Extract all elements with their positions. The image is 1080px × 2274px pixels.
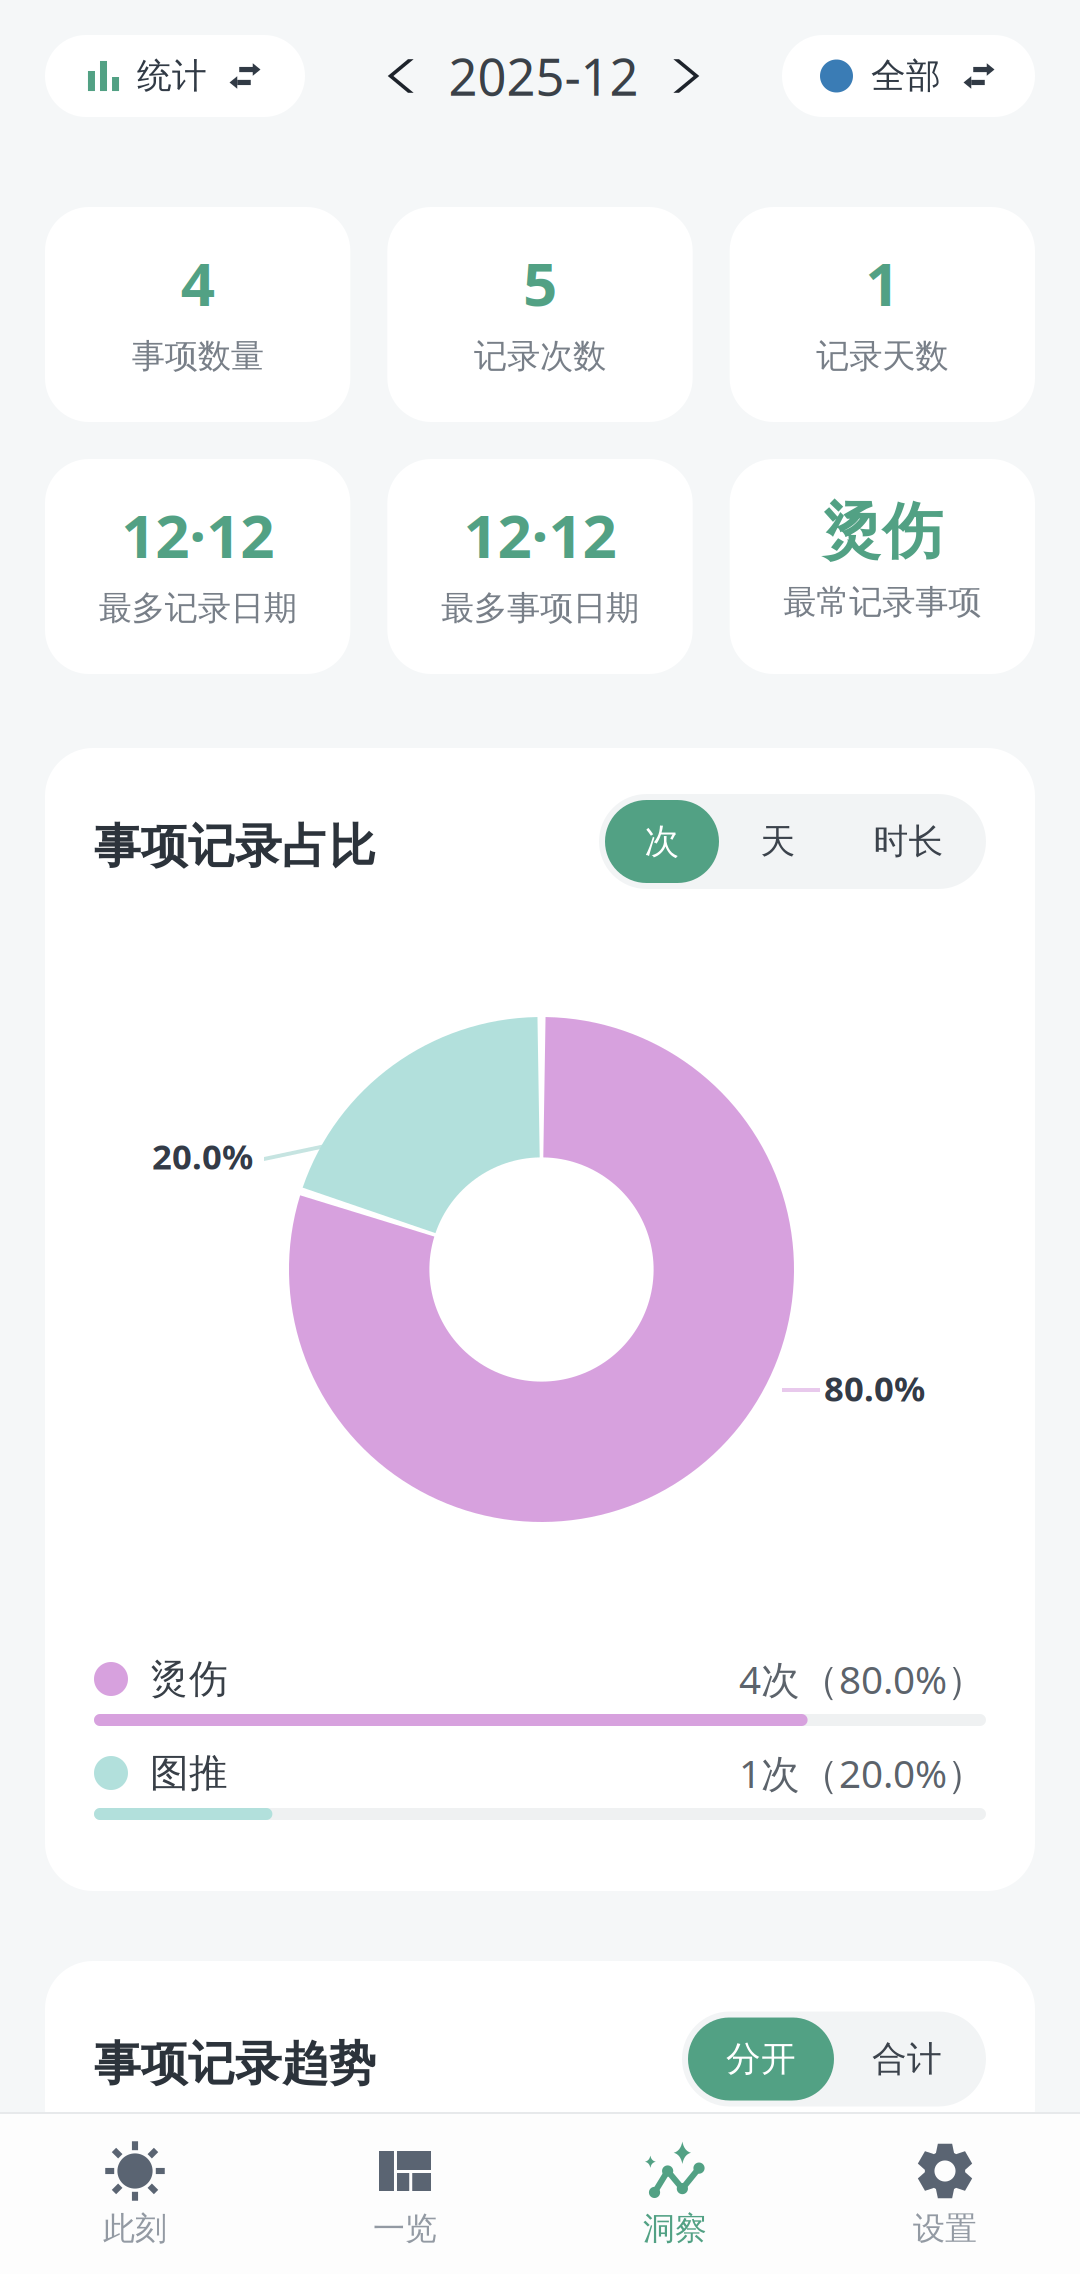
button[interactable]: 此刻 (0, 2113, 270, 2274)
staticText: 事项记录占比 (94, 818, 376, 875)
staticText: 全部 (871, 55, 941, 97)
staticText: 图推 (150, 1749, 228, 1797)
staticText: 记录天数 (816, 336, 948, 377)
staticText: 4次（80.0%） (739, 1653, 986, 1705)
staticText: 记录次数 (474, 336, 606, 377)
button[interactable]: 统计 (45, 35, 305, 117)
button[interactable]: 烫伤 (730, 459, 1035, 674)
button[interactable]: 分开 (688, 2017, 834, 2100)
button[interactable]: 全部 (782, 35, 1035, 117)
button[interactable]: 5 (387, 207, 693, 422)
button[interactable]: 合计 (834, 2017, 980, 2100)
staticText: 最多记录日期 (99, 588, 297, 629)
staticText: 时长 (873, 820, 943, 863)
staticText: 天 (760, 820, 795, 863)
staticText: 洞察 (643, 2209, 707, 2248)
button[interactable]: 1 (730, 207, 1035, 422)
staticText: 此刻 (103, 2209, 167, 2248)
button[interactable]: Next month (660, 53, 706, 99)
button[interactable]: 设置 (810, 2113, 1080, 2274)
staticText: 设置 (913, 2209, 977, 2248)
staticText: 一览 (373, 2209, 437, 2248)
staticText: 烫伤 (150, 1655, 228, 1703)
button[interactable]: 12·12 (387, 459, 693, 674)
button[interactable]: 4 (45, 207, 350, 422)
staticText: 12·12 (463, 495, 616, 575)
staticText: 事项数量 (132, 336, 264, 377)
staticText: 合计 (872, 2038, 942, 2080)
staticText: 最多事项日期 (441, 588, 639, 629)
staticText: 20.0% (152, 1133, 253, 1179)
button[interactable]: 洞察 (540, 2113, 810, 2274)
staticText: 事项记录趋势 (94, 2035, 376, 2093)
staticText: 次 (644, 820, 679, 863)
button[interactable]: Previous month (380, 53, 426, 99)
staticText: 4 (181, 243, 215, 323)
button[interactable]: 12·12 (45, 459, 350, 674)
staticText: 5 (523, 243, 557, 323)
button[interactable]: 次 (605, 800, 719, 883)
staticText: 12·12 (121, 495, 274, 575)
staticText: 1次（20.0%） (739, 1747, 986, 1799)
button[interactable]: 一览 (270, 2113, 540, 2274)
staticText: 烫伤 (822, 495, 942, 569)
staticText: 最常记录事项 (783, 582, 981, 623)
staticText: 分开 (726, 2038, 796, 2080)
button[interactable]: 时长 (837, 800, 980, 883)
staticText: 统计 (137, 55, 207, 97)
button[interactable]: 天 (719, 800, 837, 883)
staticText: 80.0% (824, 1365, 925, 1411)
staticText: 2025-12 (448, 42, 638, 110)
staticText: 1 (865, 243, 899, 323)
